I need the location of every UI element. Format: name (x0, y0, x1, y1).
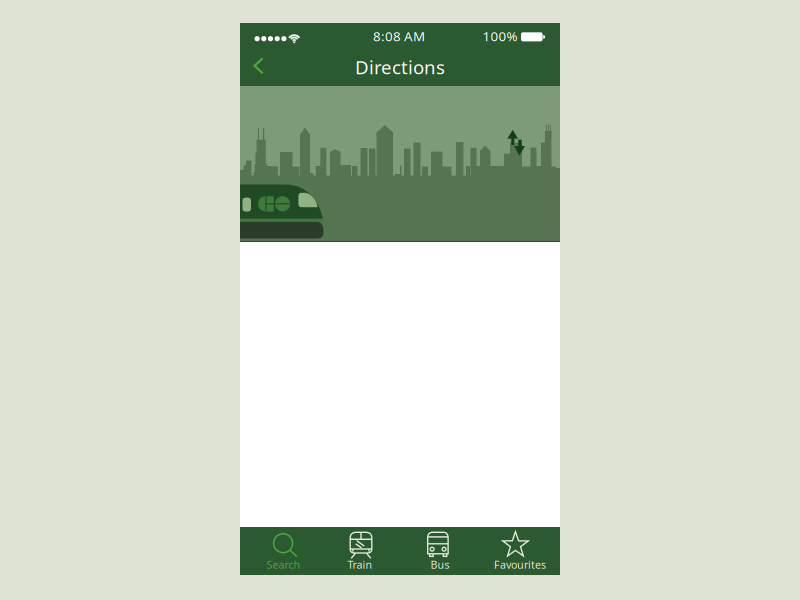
button[interactable]: Train (320, 527, 400, 575)
button[interactable]: Back (240, 48, 278, 86)
staticText: Bus (430, 557, 449, 572)
button[interactable]: Favourites (480, 527, 560, 575)
staticText: 100% (482, 27, 517, 45)
staticText: Train (347, 557, 372, 572)
staticText: 8:08 AM (373, 27, 425, 45)
button[interactable]: Bus (400, 527, 480, 575)
staticText: Search (266, 557, 300, 572)
button[interactable]: Search (240, 527, 320, 575)
staticText: Directions (355, 55, 445, 79)
staticText: Favourites (494, 557, 546, 572)
